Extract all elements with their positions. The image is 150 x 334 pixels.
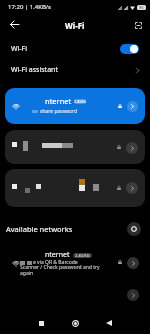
staticText: nternet — [45, 96, 72, 106]
button[interactable]: nternet — [0, 243, 150, 283]
staticText: Wi-Fi assistant — [11, 65, 58, 75]
staticText: 2.4G/5G — [74, 100, 86, 104]
button[interactable]: Wi-Fi — [0, 38, 150, 60]
staticText: nternet — [45, 250, 70, 260]
staticText: 2.4G/5G — [75, 253, 90, 258]
button[interactable]: Network details — [127, 101, 138, 112]
staticText: share password — [40, 108, 78, 115]
staticText: again — [20, 270, 34, 277]
button[interactable]: nternet — [5, 88, 145, 124]
button[interactable]: Scan QR code — [130, 17, 146, 33]
button[interactable]: Network details — [126, 182, 138, 194]
button[interactable]: Back — [5, 15, 23, 33]
button[interactable]: Home — [65, 313, 85, 333]
staticText: 17:20 | 1.4KB/s — [8, 3, 51, 11]
staticText: e via QR & Barcode — [33, 259, 78, 266]
button[interactable]: Network details — [0, 285, 150, 307]
button[interactable]: Recent apps — [31, 313, 51, 333]
button[interactable]: Back — [99, 313, 119, 333]
button[interactable]: Network details — [5, 169, 145, 207]
staticText: Scanner / Check password and try — [20, 264, 100, 271]
staticText: 95 — [139, 5, 144, 10]
button[interactable]: Network details — [126, 142, 138, 154]
button[interactable]: Wi-Fi assistant — [0, 59, 150, 81]
button[interactable]: Refresh networks — [127, 222, 141, 236]
staticText: Wi-Fi — [65, 20, 85, 31]
staticText: Available networks — [6, 224, 73, 234]
button[interactable]: Network details — [127, 289, 139, 301]
staticText: Wi-Fi — [11, 44, 28, 54]
button[interactable]: Network details — [127, 257, 139, 269]
button[interactable]: Network details — [5, 130, 145, 164]
